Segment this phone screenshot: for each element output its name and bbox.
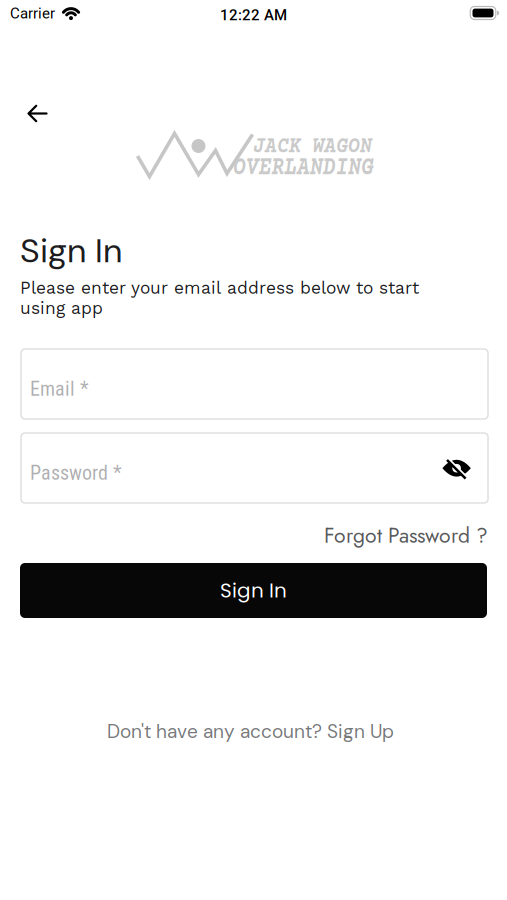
staticText: Don't have any account?	[107, 719, 322, 744]
staticText: Forgot Password ?	[324, 520, 488, 551]
staticText: Sign Up	[327, 719, 394, 744]
button[interactable]: Forgot Password ?	[324, 520, 488, 551]
staticText: Sign In	[20, 228, 122, 273]
button[interactable]: Back	[16, 104, 59, 123]
staticText: Email *	[30, 377, 89, 401]
staticText: JACK WAGON	[242, 134, 382, 160]
button[interactable]: Sign In	[20, 563, 487, 618]
staticText: 12:22 AM	[220, 6, 287, 24]
staticText: OVERLANDING	[210, 152, 397, 184]
staticText: Sign In	[220, 576, 287, 604]
button[interactable]: Show password	[435, 449, 479, 489]
staticText: Please enter your email address below to…	[20, 278, 419, 318]
button[interactable]: Sign Up	[327, 719, 394, 744]
staticText: Password *	[30, 461, 122, 485]
staticText: Carrier	[10, 4, 55, 22]
